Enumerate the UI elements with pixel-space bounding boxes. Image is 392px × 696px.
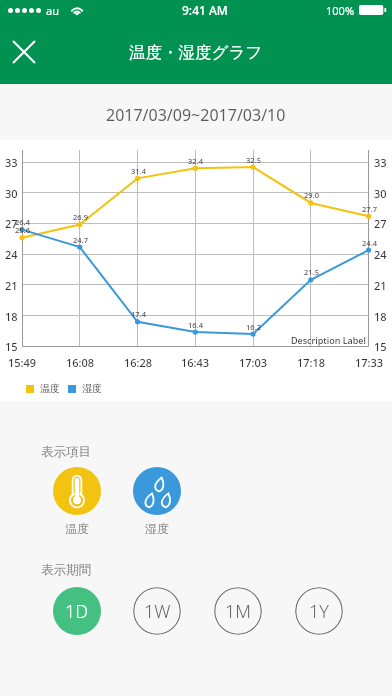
staticText: 21 xyxy=(374,278,387,293)
staticText: 2017/03/09~2017/03/10 xyxy=(106,104,286,124)
staticText: 1Y xyxy=(309,599,329,624)
staticText: 温度 xyxy=(40,382,60,395)
button[interactable]: 1M xyxy=(214,587,262,635)
button[interactable]: 1D xyxy=(53,587,101,635)
staticText: 24 xyxy=(374,247,387,262)
staticText: 31.4 xyxy=(131,166,146,176)
button[interactable]: 温度 xyxy=(53,467,101,515)
staticText: au xyxy=(46,3,59,18)
staticText: 24.4 xyxy=(362,238,377,248)
staticText: 15:49 xyxy=(8,355,37,370)
staticText: 表示期間 xyxy=(41,562,91,578)
staticText: 26.4 xyxy=(15,217,30,227)
button[interactable]: 1Y xyxy=(295,587,343,635)
staticText: 21.5 xyxy=(304,267,319,277)
staticText: 30 xyxy=(374,186,387,201)
staticText: 30 xyxy=(5,186,18,201)
staticText: 温度 xyxy=(65,521,89,536)
staticText: 16:08 xyxy=(66,355,95,370)
staticText: 17:18 xyxy=(297,355,326,370)
staticText: 1D xyxy=(65,599,89,624)
button[interactable]: 湿度 xyxy=(133,467,181,515)
staticText: 16:28 xyxy=(124,355,153,370)
staticText: 33 xyxy=(5,155,18,170)
staticText: 24.7 xyxy=(73,235,88,245)
staticText: 9:41 AM xyxy=(182,2,228,18)
staticText: 17:03 xyxy=(239,355,268,370)
staticText: 1M xyxy=(225,599,251,624)
staticText: 17:33 xyxy=(355,355,384,370)
staticText: 18 xyxy=(374,309,387,324)
staticText: 16:43 xyxy=(181,355,210,370)
staticText: 27 xyxy=(374,216,387,231)
staticText: 表示項目 xyxy=(41,444,91,460)
staticText: 29.0 xyxy=(304,190,319,200)
button[interactable]: 1W xyxy=(133,587,181,635)
staticText: 15 xyxy=(5,339,18,354)
staticText: Description Label xyxy=(291,334,366,346)
staticText: 33 xyxy=(374,155,387,170)
button[interactable]: Close xyxy=(2,30,46,74)
staticText: 湿度 xyxy=(145,521,169,536)
staticText: 21 xyxy=(5,278,18,293)
staticText: 湿度 xyxy=(82,382,102,395)
staticText: 26.9 xyxy=(73,212,88,222)
staticText: 32.4 xyxy=(188,156,203,166)
staticText: 1W xyxy=(144,599,171,624)
staticText: 16.4 xyxy=(188,320,203,330)
staticText: 100% xyxy=(326,3,355,18)
staticText: 18 xyxy=(5,309,18,324)
staticText: 27 xyxy=(5,216,18,231)
staticText: 16.2 xyxy=(246,322,261,332)
staticText: 25.6 xyxy=(15,225,30,235)
staticText: 17.4 xyxy=(131,309,146,319)
staticText: 27.7 xyxy=(362,204,377,214)
staticText: 温度・湿度グラフ xyxy=(129,42,263,63)
staticText: 15 xyxy=(374,339,387,354)
staticText: 32.5 xyxy=(246,155,261,165)
staticText: 24 xyxy=(5,247,18,262)
